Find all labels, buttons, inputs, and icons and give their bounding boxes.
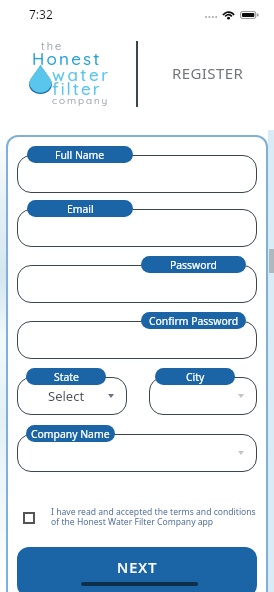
staticText: I have read and accepted the terms and c… (51, 506, 256, 528)
staticText: the (41, 39, 64, 53)
button[interactable] (17, 155, 257, 193)
staticText: Email (67, 202, 94, 216)
button[interactable]: Full Name (27, 146, 133, 163)
button[interactable]: Confirm Password (141, 312, 246, 329)
staticText: Select (48, 387, 85, 405)
staticText: State (54, 370, 79, 384)
button[interactable]: City (155, 368, 235, 385)
staticText: Password (170, 258, 217, 272)
staticText: Honest (32, 48, 102, 69)
button[interactable] (17, 265, 257, 303)
button[interactable] (149, 377, 257, 415)
button[interactable]: I have read and accepted the terms and c… (23, 506, 263, 528)
button[interactable] (17, 321, 257, 359)
button[interactable]: Email (27, 200, 133, 217)
staticText: City (186, 370, 205, 384)
staticText: Confirm Password (149, 314, 239, 328)
button[interactable]: Company Name (26, 425, 115, 442)
staticText: NEXT (117, 557, 158, 577)
staticText: Full Name (55, 148, 105, 162)
staticText: Company Name (31, 427, 110, 441)
staticText: company (52, 94, 110, 107)
button[interactable]: Password (141, 256, 246, 273)
button[interactable]: State (26, 368, 106, 385)
staticText: water (52, 64, 111, 85)
staticText: 7:32 (29, 6, 53, 22)
button[interactable]: Select (17, 377, 127, 415)
button[interactable] (17, 209, 257, 247)
button[interactable] (17, 434, 257, 472)
staticText: REGISTER (172, 63, 244, 83)
staticText: filter (52, 78, 102, 99)
button[interactable]: NEXT (17, 547, 257, 592)
